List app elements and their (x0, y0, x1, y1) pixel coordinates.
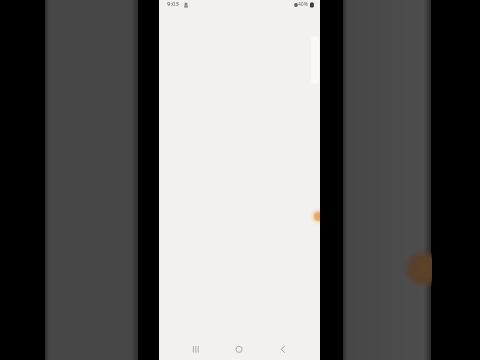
staticText: 9:03 (167, 0, 179, 8)
button[interactable] (189, 342, 203, 356)
staticText: 40% (298, 1, 308, 8)
button[interactable] (276, 342, 290, 356)
button[interactable] (232, 342, 246, 356)
